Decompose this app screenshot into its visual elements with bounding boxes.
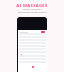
button[interactable] <box>41 31 45 33</box>
staticText: personalized massage program <box>18 11 47 14</box>
staticText: AI MASSAGES <box>16 3 48 9</box>
staticText: assists in selecting a <box>23 8 42 11</box>
